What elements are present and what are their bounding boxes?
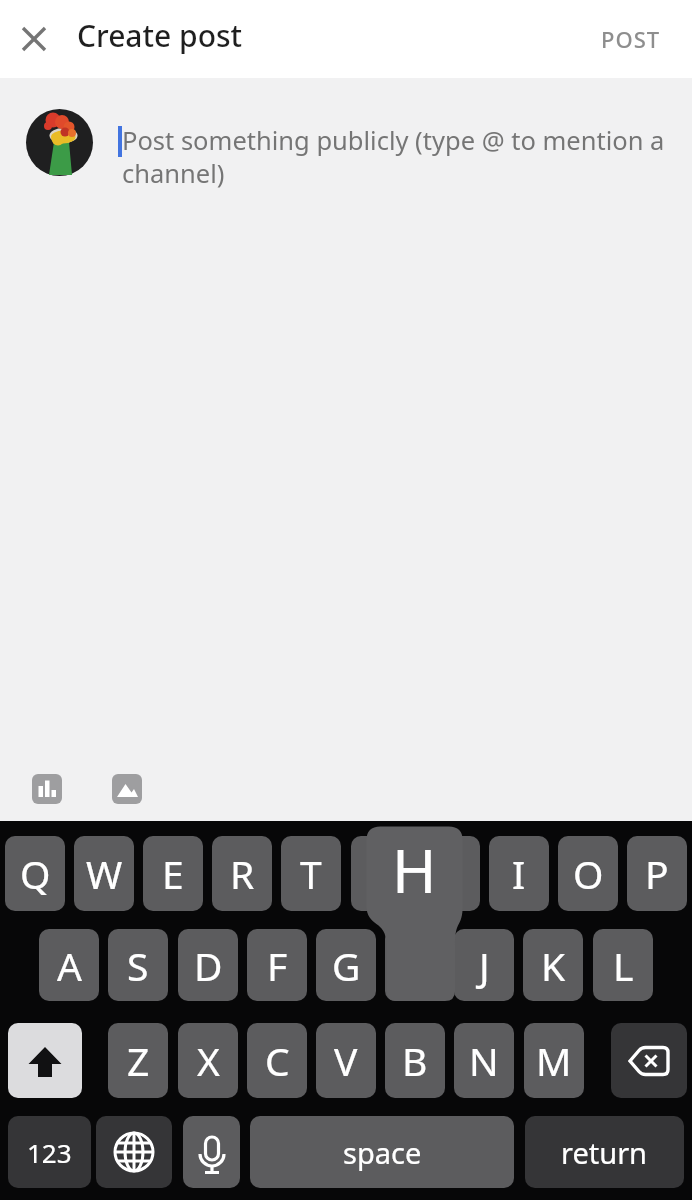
button[interactable]: J: [454, 929, 514, 1001]
staticText: X: [197, 1034, 220, 1087]
button[interactable]: C: [247, 1023, 307, 1098]
staticText: K: [541, 939, 566, 992]
staticText: Create post: [77, 15, 243, 56]
staticText: F: [267, 939, 288, 992]
button[interactable]: L: [593, 929, 653, 1001]
staticText: R: [230, 847, 255, 900]
staticText: M: [536, 1034, 572, 1087]
button[interactable]: [611, 1023, 687, 1098]
button[interactable]: [12, 17, 56, 61]
button[interactable]: F: [247, 929, 307, 1001]
button[interactable]: return: [525, 1116, 684, 1188]
staticText: H: [392, 829, 437, 911]
button[interactable]: S: [108, 929, 168, 1001]
staticText: Z: [127, 1034, 150, 1087]
staticText: G: [332, 939, 361, 992]
button[interactable]: M: [524, 1023, 584, 1098]
staticText: E: [162, 847, 184, 900]
staticText: return: [561, 1133, 648, 1172]
button[interactable]: [112, 774, 142, 804]
staticText: N: [469, 1034, 499, 1087]
button[interactable]: X: [178, 1023, 238, 1098]
staticText: space: [343, 1133, 422, 1172]
button[interactable]: [8, 1023, 82, 1098]
button[interactable]: Z: [108, 1023, 168, 1098]
button[interactable]: V: [316, 1023, 376, 1098]
button[interactable]: N: [454, 1023, 514, 1098]
button[interactable]: T: [281, 836, 341, 911]
button[interactable]: H: [385, 929, 445, 1001]
button[interactable]: [32, 774, 62, 804]
button[interactable]: W: [74, 836, 134, 911]
staticText: T: [300, 847, 322, 900]
staticText: Post something publicly (type @ to menti…: [122, 123, 665, 190]
button[interactable]: Y: [351, 836, 411, 911]
staticText: I: [512, 847, 526, 900]
button[interactable]: space: [250, 1116, 514, 1188]
staticText: A: [57, 939, 82, 992]
staticText: J: [479, 939, 490, 992]
button[interactable]: [183, 1116, 240, 1188]
button[interactable]: U: [420, 836, 480, 911]
button[interactable]: [96, 1116, 172, 1188]
staticText: O: [573, 847, 604, 900]
staticText: 123: [27, 1135, 72, 1170]
button[interactable]: B: [385, 1023, 445, 1098]
staticText: B: [402, 1034, 428, 1087]
staticText: P: [645, 847, 669, 900]
button[interactable]: I: [489, 836, 549, 911]
staticText: Q: [20, 847, 51, 900]
staticText: POST: [601, 24, 661, 54]
button[interactable]: POST: [585, 14, 677, 64]
staticText: V: [334, 1034, 358, 1087]
staticText: S: [127, 939, 149, 992]
staticText: L: [613, 939, 634, 992]
button[interactable]: D: [178, 929, 238, 1001]
button[interactable]: K: [523, 929, 583, 1001]
button[interactable]: A: [39, 929, 99, 1001]
staticText: C: [265, 1034, 290, 1087]
button[interactable]: R: [212, 836, 272, 911]
staticText: D: [194, 939, 223, 992]
button[interactable]: O: [558, 836, 618, 911]
button[interactable]: P: [627, 836, 687, 911]
button[interactable]: 123: [8, 1116, 91, 1188]
staticText: W: [86, 847, 123, 900]
button[interactable]: Q: [5, 836, 65, 911]
button[interactable]: E: [143, 836, 203, 911]
button[interactable]: G: [316, 929, 376, 1001]
